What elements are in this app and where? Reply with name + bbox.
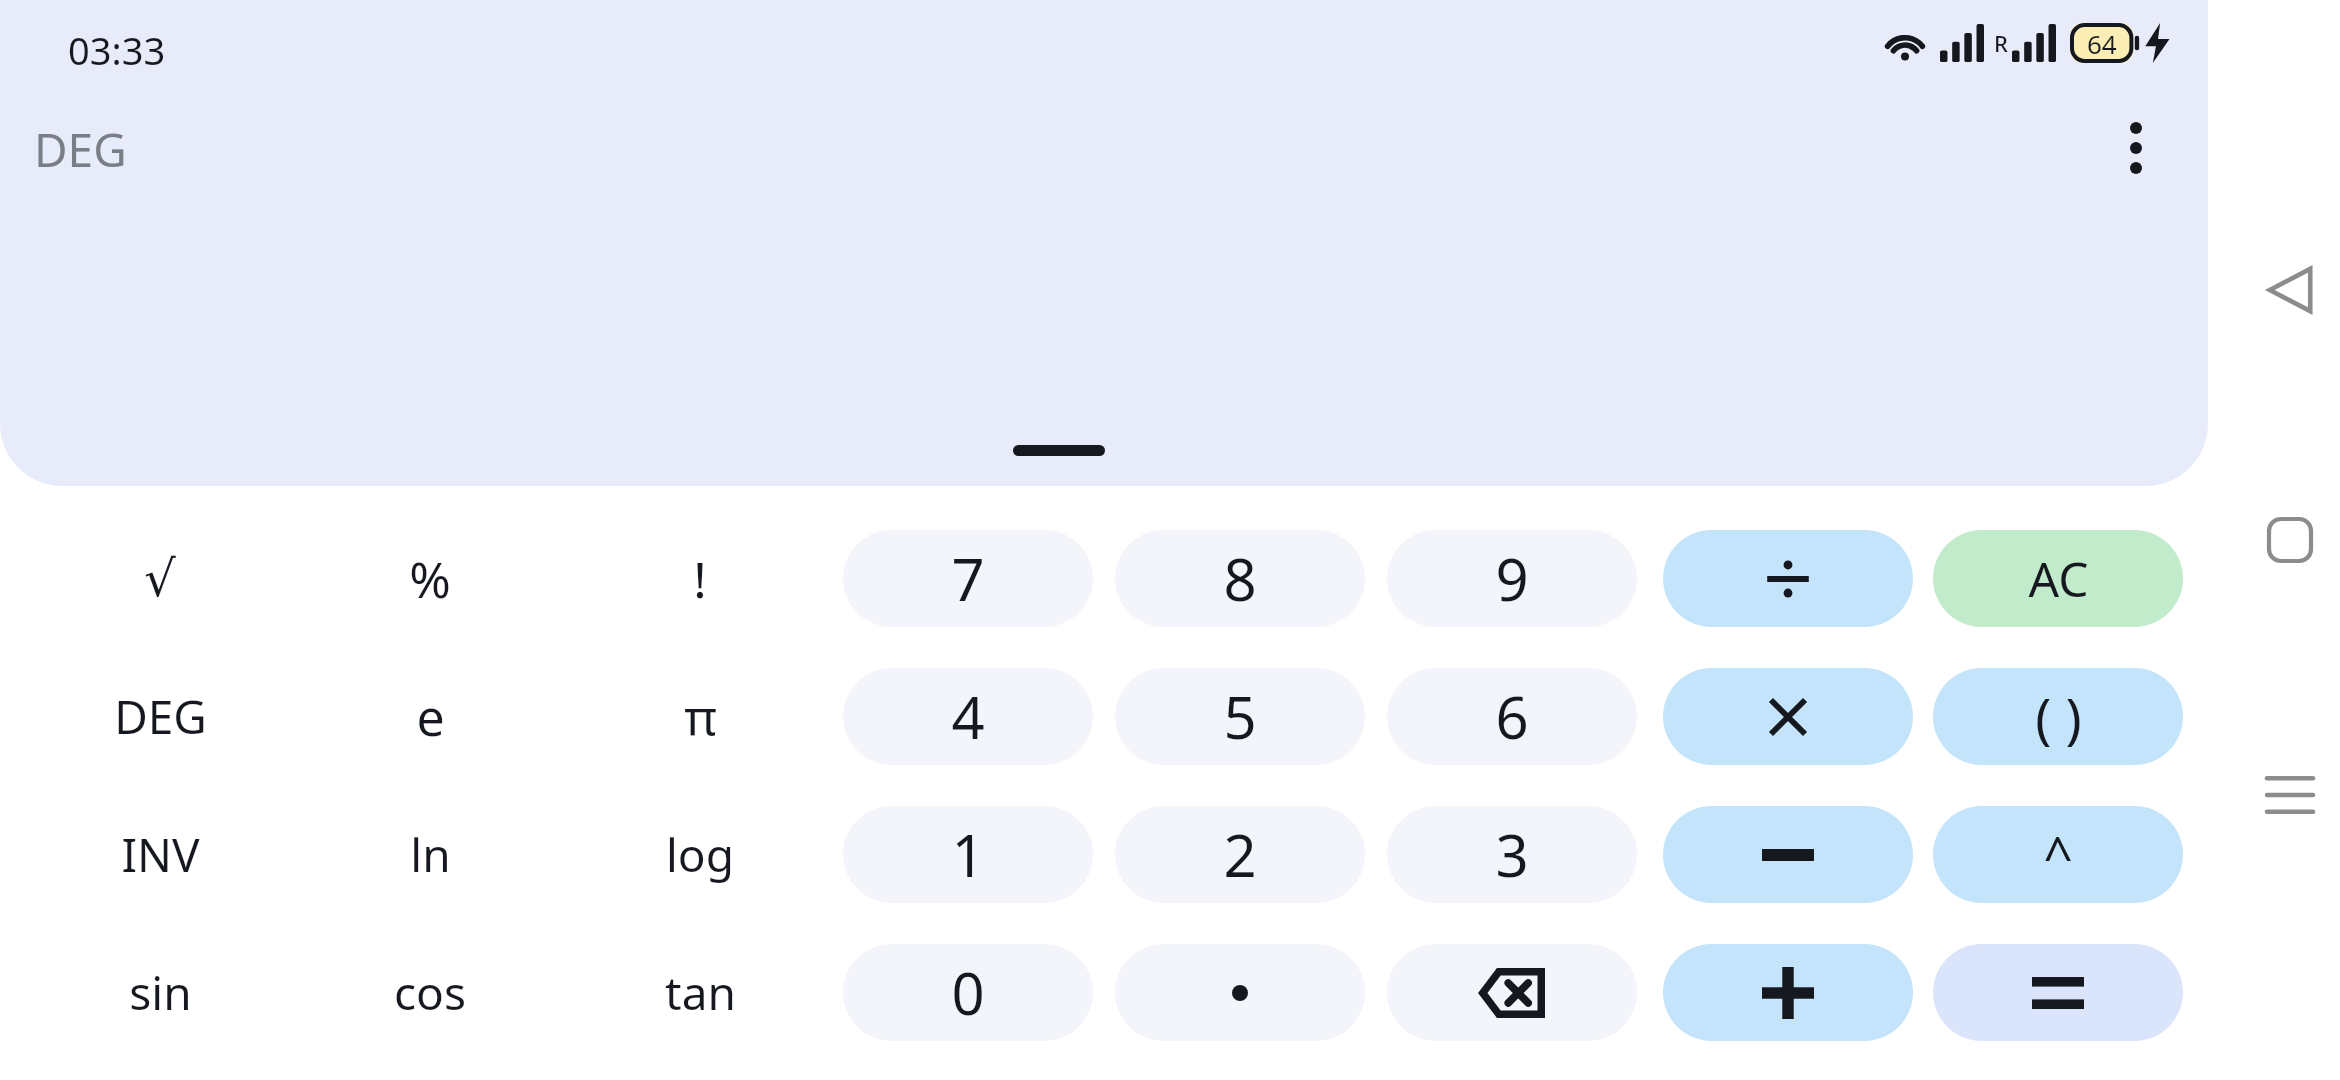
button[interactable]: [1663, 806, 1913, 903]
button[interactable]: Delete: [1387, 944, 1637, 1041]
button[interactable]: ln: [305, 806, 555, 903]
staticText: 2: [1223, 815, 1257, 894]
staticText: 64: [2087, 26, 2117, 61]
staticText: DEG: [34, 118, 127, 181]
staticText: π: [684, 683, 717, 751]
button[interactable]: AC: [1933, 530, 2183, 627]
button[interactable]: cos: [305, 944, 555, 1041]
button[interactable]: 5: [1115, 668, 1365, 765]
staticText: 4: [951, 677, 985, 756]
button[interactable]: tan: [575, 944, 825, 1041]
button[interactable]: e: [305, 668, 555, 765]
staticText: log: [666, 823, 734, 886]
button[interactable]: 9: [1387, 530, 1637, 627]
button[interactable]: Decimal point: [1115, 944, 1365, 1041]
staticText: 1: [951, 815, 985, 894]
staticText: %: [409, 545, 451, 613]
staticText: INV: [121, 823, 200, 886]
staticText: 8: [1223, 539, 1257, 618]
button[interactable]: DEG: [35, 668, 285, 765]
staticText: 3: [1495, 815, 1529, 894]
staticText: cos: [394, 961, 466, 1024]
button[interactable]: π: [575, 668, 825, 765]
button[interactable]: Equals: [1933, 944, 2183, 1041]
staticText: DEG: [114, 685, 207, 748]
staticText: sin: [129, 961, 192, 1024]
button[interactable]: 8: [1115, 530, 1365, 627]
button[interactable]: sin: [35, 944, 285, 1041]
staticText: !: [693, 545, 707, 613]
staticText: 7: [951, 539, 985, 618]
staticText: e: [416, 683, 445, 751]
button[interactable]: Home: [2240, 490, 2340, 590]
button[interactable]: Recent apps: [2240, 745, 2340, 845]
button[interactable]: 6: [1387, 668, 1637, 765]
button[interactable]: Expand history: [1013, 445, 1105, 456]
staticText: tan: [665, 961, 736, 1024]
button[interactable]: 2: [1115, 806, 1365, 903]
button[interactable]: ( ): [1933, 668, 2183, 765]
staticText: ln: [410, 823, 451, 886]
button[interactable]: 7: [843, 530, 1093, 627]
button[interactable]: %: [305, 530, 555, 627]
button[interactable]: DEG: [18, 110, 143, 189]
staticText: 0: [951, 953, 985, 1032]
button[interactable]: INV: [35, 806, 285, 903]
staticText: 5: [1223, 677, 1257, 756]
staticText: AC: [2028, 546, 2089, 611]
button[interactable]: [1663, 668, 1913, 765]
button[interactable]: [1663, 944, 1913, 1041]
button[interactable]: √: [35, 530, 285, 627]
staticText: ^: [2043, 819, 2073, 890]
button[interactable]: log: [575, 806, 825, 903]
staticText: 9: [1495, 539, 1529, 618]
staticText: 6: [1495, 677, 1529, 756]
button[interactable]: Back: [2240, 240, 2340, 340]
button[interactable]: 0: [843, 944, 1093, 1041]
staticText: 03:33: [68, 24, 166, 76]
staticText: √: [144, 550, 176, 608]
button[interactable]: 1: [843, 806, 1093, 903]
staticText: ( ): [2035, 680, 2082, 754]
button[interactable]: 4: [843, 668, 1093, 765]
button[interactable]: !: [575, 530, 825, 627]
button[interactable]: 3: [1387, 806, 1637, 903]
button[interactable]: [1663, 530, 1913, 627]
staticText: R: [1994, 28, 2008, 58]
button[interactable]: More options: [2088, 100, 2184, 196]
button[interactable]: ^: [1933, 806, 2183, 903]
